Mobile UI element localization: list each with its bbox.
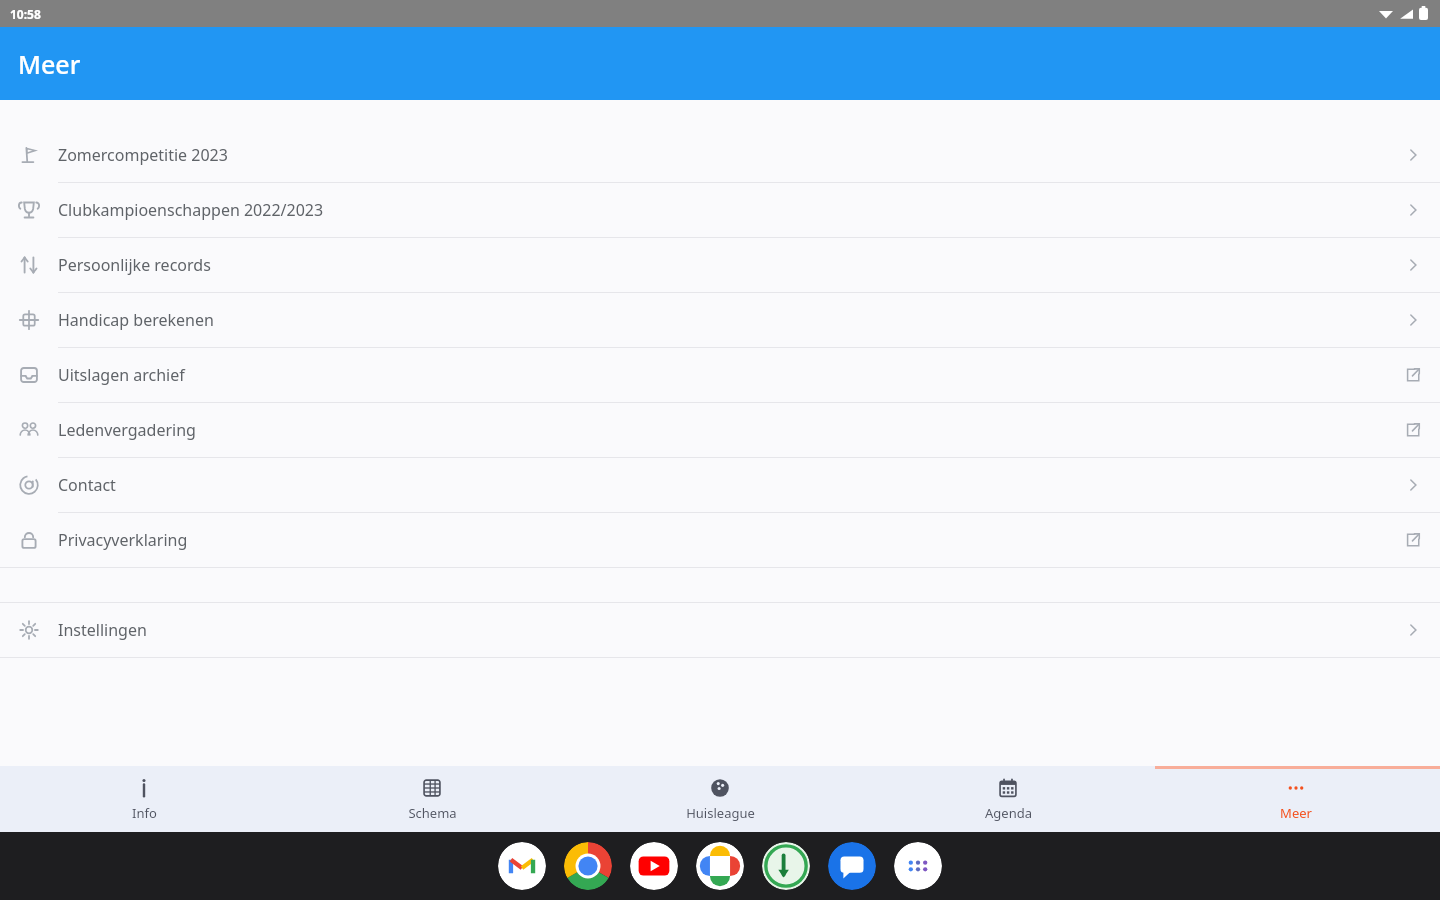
staticText: Uitslagen archief — [58, 364, 1404, 386]
staticText: Zomercompetitie 2023 — [58, 144, 1404, 166]
button[interactable]: App — [498, 842, 546, 890]
button[interactable]: Ledenvergadering — [0, 403, 1440, 457]
button[interactable]: Agenda — [864, 766, 1152, 832]
button[interactable]: App — [696, 842, 744, 890]
staticText: Huisleague — [686, 804, 755, 822]
staticText: Info — [132, 804, 157, 822]
button[interactable]: Uitslagen archief — [0, 348, 1440, 402]
button[interactable]: Huisleague — [576, 766, 864, 832]
button[interactable]: Meer — [1152, 766, 1440, 832]
staticText: 10:58 — [10, 6, 41, 22]
button[interactable]: Privacyverklaring — [0, 513, 1440, 567]
staticText: Handicap berekenen — [58, 309, 1404, 331]
staticText: Ledenvergadering — [58, 419, 1404, 441]
button[interactable]: App — [828, 842, 876, 890]
button[interactable]: Instellingen — [0, 603, 1440, 657]
button[interactable]: App — [762, 842, 810, 890]
button[interactable]: App — [630, 842, 678, 890]
staticText: Instellingen — [58, 619, 1404, 641]
staticText: Agenda — [985, 804, 1032, 822]
staticText: Clubkampioenschappen 2022/2023 — [58, 199, 1404, 221]
staticText: Schema — [408, 804, 457, 822]
staticText: Contact — [58, 474, 1404, 496]
button[interactable]: Zomercompetitie 2023 — [0, 128, 1440, 182]
button[interactable]: Clubkampioenschappen 2022/2023 — [0, 183, 1440, 237]
button[interactable]: Info — [0, 766, 288, 832]
button[interactable]: Handicap berekenen — [0, 293, 1440, 347]
staticText: Meer — [18, 47, 81, 81]
button[interactable]: Contact — [0, 458, 1440, 512]
button[interactable]: Schema — [288, 766, 576, 832]
button[interactable]: Persoonlijke records — [0, 238, 1440, 292]
button[interactable]: App — [894, 842, 942, 890]
staticText: Meer — [1280, 804, 1312, 822]
button[interactable]: App — [564, 842, 612, 890]
staticText: Persoonlijke records — [58, 254, 1404, 276]
staticText: Privacyverklaring — [58, 529, 1404, 551]
